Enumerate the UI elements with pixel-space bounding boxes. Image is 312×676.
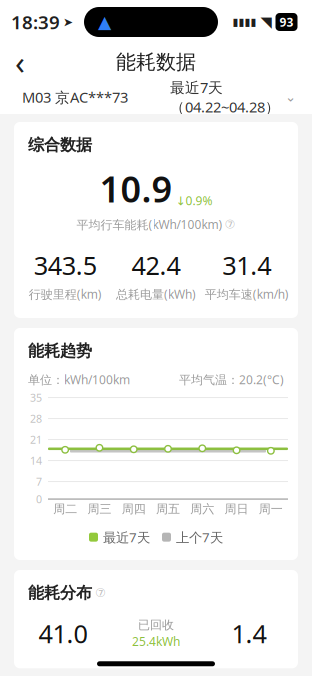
staticText: 综合数据	[28, 135, 92, 155]
staticText: 最近7天	[103, 528, 150, 546]
staticText: 周三	[87, 502, 111, 516]
staticText: 行驶里程(km)	[29, 286, 102, 302]
staticText: 周五	[156, 502, 180, 516]
staticText: ▲	[98, 12, 111, 32]
staticText: 总耗电量(kWh)	[116, 286, 196, 302]
staticText: 最近7天（04.22~04.28）	[170, 77, 280, 116]
staticText: 35	[30, 390, 42, 405]
staticText: 28	[30, 411, 42, 426]
staticText: 平均车速(km/h)	[205, 286, 289, 302]
staticText: ➤	[63, 15, 73, 29]
staticText: 平均气温：20.2(°C)	[179, 372, 284, 387]
staticText: ⌄	[285, 89, 296, 104]
staticText: 7	[36, 474, 42, 489]
staticText: 1.4	[231, 617, 266, 650]
staticText: 25.4kWh	[132, 633, 180, 649]
staticText: 10.9	[99, 165, 172, 212]
staticText: 上个7天	[176, 528, 223, 546]
staticText: 18:39	[11, 10, 60, 34]
staticText: 42.4	[131, 248, 180, 282]
staticText: ◥	[260, 14, 271, 30]
staticText: 21	[30, 432, 42, 447]
staticText: ↓0.9%	[175, 192, 212, 208]
staticText: 单位：kWh/100km	[28, 372, 130, 387]
button[interactable]: M03 京AC***73	[0, 87, 128, 107]
staticText: ⑦	[224, 218, 235, 231]
staticText: 周二	[53, 502, 77, 516]
staticText: M03 京AC***73	[22, 87, 128, 107]
staticText: 周日	[225, 502, 249, 516]
staticText: ▮▮▮▮	[232, 16, 256, 28]
staticText: 能耗分布	[28, 583, 92, 603]
staticText: 31.4	[222, 248, 271, 282]
staticText: 93	[279, 14, 293, 30]
button[interactable]: 最近7天（04.22~04.28）	[170, 77, 312, 116]
staticText: 周六	[190, 502, 214, 516]
button[interactable]: Back	[0, 45, 40, 79]
staticText: 已回收	[138, 618, 174, 632]
staticText: 周一	[259, 502, 283, 516]
staticText: 41.0	[38, 617, 87, 650]
staticText: ⑦	[95, 586, 106, 600]
staticText: 平均行车能耗(kWh/100km)	[76, 216, 222, 232]
staticText: 343.5	[34, 248, 97, 282]
staticText: ‹	[15, 41, 25, 83]
staticText: 14	[30, 453, 42, 468]
staticText: 0	[36, 492, 42, 506]
staticText: 能耗趋势	[28, 341, 92, 361]
staticText: 周四	[122, 502, 146, 516]
staticText: 能耗数据	[116, 50, 196, 74]
